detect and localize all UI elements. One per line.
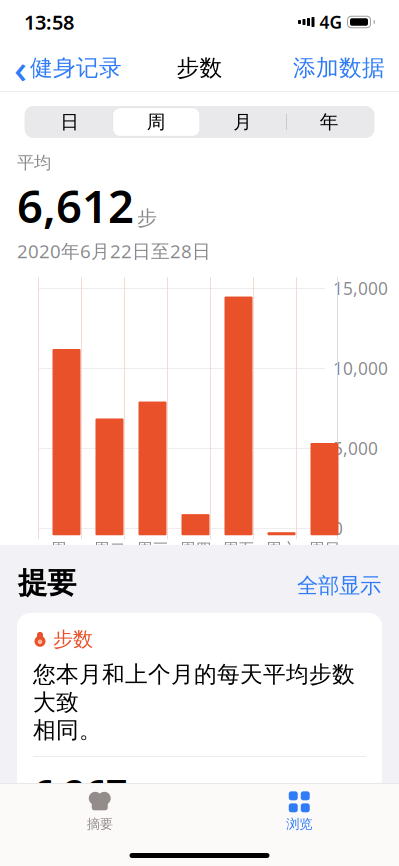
staticText: 提要 xyxy=(18,565,76,601)
staticText: 5,000 xyxy=(333,437,378,460)
staticText: 全部显示 xyxy=(297,573,381,599)
staticText: 添加数据 xyxy=(293,54,385,82)
staticText: 浏览 xyxy=(286,816,312,832)
button[interactable]: 摘要 xyxy=(0,784,199,832)
staticText: 周六 xyxy=(265,539,297,559)
button[interactable]: 日 xyxy=(26,108,113,136)
staticText: 周五 xyxy=(222,539,254,559)
staticText: 周一 xyxy=(50,539,82,559)
staticText: 您本月和上个月的每天平均步数大致 相同。 xyxy=(33,661,355,744)
staticText: 周四 xyxy=(179,539,211,559)
staticText: 13:58 xyxy=(24,9,74,35)
staticText: 年 xyxy=(320,110,339,133)
staticText: 步数 xyxy=(176,54,222,82)
staticText: 周 xyxy=(147,110,166,133)
button[interactable]: 步数 xyxy=(17,613,382,863)
staticText: 日 xyxy=(60,110,79,133)
staticText: 6,612 xyxy=(17,175,134,235)
button[interactable]: 周 xyxy=(113,108,199,136)
button[interactable]: 月 xyxy=(199,108,286,136)
button[interactable]: 全部显示 xyxy=(297,573,381,599)
staticText: 步数 xyxy=(53,627,93,652)
staticText: 4G xyxy=(319,10,342,33)
staticText: 6,267 xyxy=(33,768,127,817)
staticText: 周日 xyxy=(308,539,340,559)
button[interactable]: 添加数据 xyxy=(283,48,395,88)
staticText: 周二 xyxy=(93,539,125,559)
button[interactable]: 浏览 xyxy=(199,784,399,832)
staticText: 月 xyxy=(233,110,252,133)
staticText: 周三 xyxy=(136,539,168,559)
staticText: 0 xyxy=(333,517,343,540)
staticText: 平均 xyxy=(17,152,51,173)
staticText: 2020年6月22日至28日 xyxy=(17,238,211,263)
staticText: 健身记录 xyxy=(30,54,122,82)
button[interactable]: ‹ xyxy=(4,35,132,100)
staticText: 15,000 xyxy=(333,277,388,300)
staticText: ‹ xyxy=(14,41,27,94)
staticText: 步 xyxy=(137,206,157,230)
staticText: 摘要 xyxy=(87,816,113,832)
button[interactable]: 年 xyxy=(286,108,372,136)
staticText: 10,000 xyxy=(333,357,388,380)
